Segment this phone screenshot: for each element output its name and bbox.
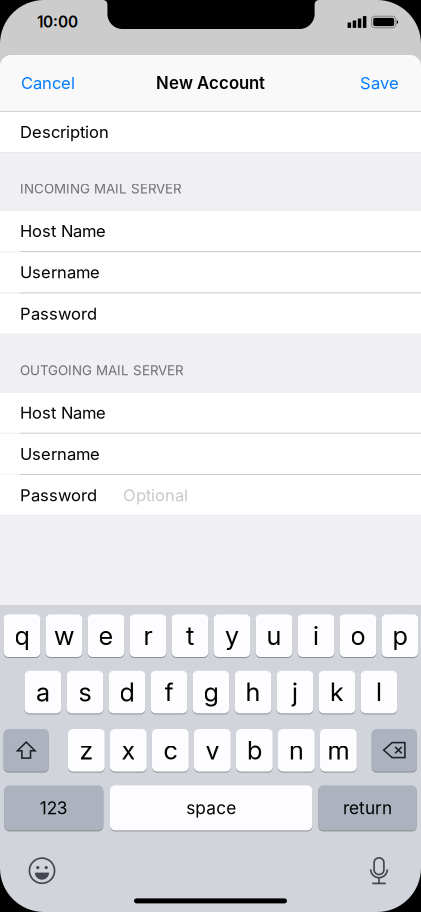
button[interactable]: j <box>277 670 313 714</box>
button[interactable]: return <box>318 785 417 831</box>
staticText: c <box>163 735 177 766</box>
staticText: Password <box>20 304 97 324</box>
staticText: OUTGOING MAIL SERVER <box>20 362 184 378</box>
staticText: Save <box>360 73 399 93</box>
button[interactable]: Host Name <box>0 392 421 433</box>
staticText: z <box>79 735 93 766</box>
staticText: b <box>247 735 262 766</box>
staticText: Password <box>20 485 97 505</box>
staticText: return <box>343 797 392 818</box>
staticText: Username <box>20 262 100 282</box>
button[interactable]: e <box>88 614 124 657</box>
button[interactable]: r <box>130 614 166 657</box>
button[interactable]: o <box>340 614 376 657</box>
button[interactable]: Cancel <box>16 62 80 104</box>
button[interactable]: t <box>172 614 208 657</box>
button[interactable]: u <box>256 614 292 657</box>
button[interactable]: Username <box>0 434 421 474</box>
button[interactable]: n <box>278 728 315 772</box>
button[interactable]: d <box>109 670 145 714</box>
button[interactable]: Password <box>0 293 421 334</box>
button[interactable]: Password <box>0 475 421 515</box>
button[interactable]: f <box>151 670 187 714</box>
staticText: k <box>330 677 344 708</box>
button[interactable]: space <box>110 785 312 831</box>
staticText: o <box>350 620 365 651</box>
staticText: i <box>313 620 319 651</box>
staticText: 10:00 <box>37 13 78 31</box>
button[interactable]: Host Name <box>0 211 421 251</box>
staticText: y <box>225 620 239 651</box>
staticText: p <box>392 620 407 651</box>
button[interactable]: c <box>152 728 189 772</box>
button[interactable]: x <box>110 728 147 772</box>
button[interactable]: p <box>382 614 418 657</box>
staticText: x <box>121 735 135 766</box>
button[interactable]: Emoji <box>28 857 55 884</box>
button[interactable]: Username <box>0 252 421 293</box>
staticText: v <box>205 735 219 766</box>
button[interactable]: s <box>67 670 103 714</box>
button[interactable]: Description <box>0 112 421 152</box>
staticText: Optional <box>123 485 188 505</box>
button[interactable]: g <box>193 670 229 714</box>
staticText: r <box>143 620 152 651</box>
staticText: a <box>36 677 50 708</box>
button[interactable]: v <box>194 728 231 772</box>
staticText: e <box>98 620 113 651</box>
staticText: Host Name <box>20 221 106 241</box>
staticText: h <box>245 677 260 708</box>
button[interactable]: Dictation <box>368 857 390 885</box>
button[interactable]: i <box>298 614 334 657</box>
staticText: space <box>186 797 236 818</box>
staticText: s <box>78 677 91 708</box>
staticText: New Account <box>156 73 265 93</box>
button[interactable]: h <box>235 670 271 714</box>
staticText: Description <box>20 122 109 142</box>
staticText: INCOMING MAIL SERVER <box>20 181 182 197</box>
staticText: d <box>119 677 134 708</box>
staticText: f <box>164 677 173 708</box>
button[interactable]: 123 <box>4 785 103 831</box>
button[interactable]: a <box>25 670 61 714</box>
button[interactable]: q <box>4 614 40 657</box>
staticText: t <box>186 620 194 651</box>
button[interactable]: b <box>236 728 273 772</box>
staticText: l <box>376 677 382 708</box>
staticText: q <box>14 620 29 651</box>
button[interactable]: y <box>214 614 250 657</box>
button[interactable]: z <box>68 728 105 772</box>
staticText: 123 <box>40 797 68 818</box>
button[interactable]: Shift <box>4 728 49 772</box>
staticText: n <box>289 735 304 766</box>
button[interactable]: k <box>319 670 355 714</box>
button[interactable]: Save <box>355 62 404 104</box>
button[interactable]: w <box>46 614 82 657</box>
button[interactable]: l <box>361 670 397 714</box>
button[interactable]: m <box>320 728 357 772</box>
staticText: g <box>203 677 218 708</box>
staticText: u <box>266 620 281 651</box>
staticText: Cancel <box>21 73 75 93</box>
staticText: Username <box>20 444 100 464</box>
staticText: j <box>292 677 298 708</box>
staticText: w <box>54 620 74 651</box>
staticText: m <box>327 735 349 766</box>
button[interactable]: Delete <box>372 728 417 772</box>
staticText: Host Name <box>20 403 106 423</box>
